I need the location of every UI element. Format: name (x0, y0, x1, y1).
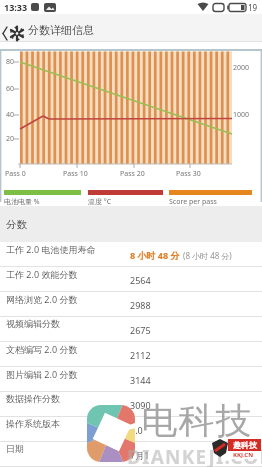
button[interactable]: 视频编辑分数 (0, 317, 262, 342)
staticText: 20 (6, 134, 15, 144)
button[interactable]: 工作 2.0 效能分数 (0, 267, 262, 292)
button[interactable]: 日期 (0, 442, 262, 467)
staticText: 19 (248, 2, 258, 13)
staticText: 2675 (130, 324, 151, 336)
staticText: 图片编辑 2.0 分数 (6, 368, 78, 380)
staticText: 6.0 (130, 424, 143, 436)
staticText: 3144 (130, 374, 151, 386)
staticText: 操作系统版本 (6, 418, 60, 429)
button[interactable]: 图片编辑 2.0 分数 (0, 367, 262, 392)
staticText: Score per pass (169, 197, 217, 207)
staticText: 2000 (233, 63, 250, 73)
button[interactable]: 网络浏览 2.0 分数 (0, 292, 262, 317)
staticText: 趣科技 (233, 440, 257, 450)
staticText: 2564 (130, 274, 151, 286)
staticText: Pass 10 (63, 169, 88, 179)
staticText: KKJ.CN (233, 451, 254, 459)
staticText: 60 (6, 84, 15, 94)
staticText: 视频编辑分数 (6, 318, 60, 329)
staticText: 工作 2.0 效能分数 (6, 268, 78, 280)
staticText: 温度 °C (88, 197, 112, 207)
staticText: 2988 (130, 299, 151, 311)
staticText: 7月1 (130, 449, 150, 461)
staticText: Pass 0 (5, 169, 26, 179)
staticText: 3090 (130, 399, 151, 411)
staticText: Pass 20 (120, 169, 145, 179)
staticText: 2112 (130, 349, 151, 361)
staticText: 日期 (6, 443, 24, 454)
staticText: 电科技 (141, 398, 252, 443)
button[interactable]: 数据操作分数 (0, 392, 262, 417)
staticText: Pass 30 (176, 169, 201, 179)
staticText: (8 小时 48 分) (183, 250, 232, 261)
button[interactable]: 文档编写 2.0 分数 (0, 342, 262, 367)
staticText: DIANKEJI.COM (127, 444, 262, 467)
staticText: 13:33 (4, 1, 28, 13)
staticText: 分数详细信息 (28, 23, 94, 37)
staticText: 分数 (6, 218, 27, 231)
staticText: 80 (6, 57, 15, 67)
staticText: 文档编写 2.0 分数 (6, 343, 78, 355)
button[interactable]: 分数详细信息 (0, 14, 94, 42)
staticText: 工作 2.0 电池使用寿命 (6, 243, 96, 255)
button[interactable]: 操作系统版本 (0, 417, 262, 442)
staticText: 1000 (233, 110, 250, 120)
staticText: 40 (6, 110, 15, 120)
staticText: 电池电量 % (4, 197, 40, 207)
button[interactable]: 工作 2.0 电池使用寿命 (0, 242, 262, 267)
staticText: 网络浏览 2.0 分数 (6, 293, 78, 305)
staticText: 数据操作分数 (6, 393, 60, 404)
staticText: 8 小时 48 分 (130, 249, 180, 261)
